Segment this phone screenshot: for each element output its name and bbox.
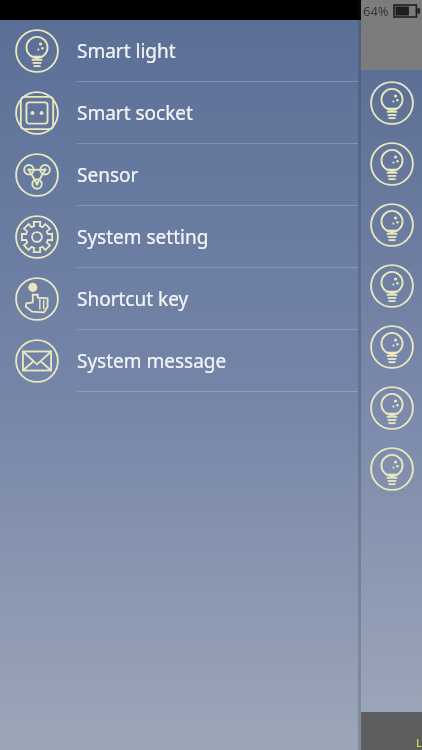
staticText: System setting	[77, 224, 209, 250]
staticText: System message	[77, 348, 227, 374]
button[interactable]: Light 4	[361, 255, 422, 316]
button[interactable]: Smart socket	[0, 82, 422, 143]
staticText: Smart socket	[77, 100, 193, 126]
button[interactable]: Sensor	[0, 144, 422, 205]
staticText: 64%	[363, 2, 389, 20]
staticText: Shortcut key	[77, 286, 189, 312]
staticText: Sensor	[77, 162, 139, 188]
button[interactable]: Shortcut key	[0, 268, 422, 329]
button[interactable]: Light 2	[361, 133, 422, 194]
staticText: Smart light	[77, 38, 176, 64]
staticText: L	[416, 735, 422, 750]
button[interactable]: Light 7	[361, 438, 422, 499]
button[interactable]: System setting	[0, 206, 422, 267]
button[interactable]: System message	[0, 330, 422, 391]
button[interactable]: Light 5	[361, 316, 422, 377]
button[interactable]: Smart light	[0, 20, 422, 81]
button[interactable]: Light 1	[361, 72, 422, 133]
button[interactable]: Light 3	[361, 194, 422, 255]
button[interactable]: Light 6	[361, 377, 422, 438]
